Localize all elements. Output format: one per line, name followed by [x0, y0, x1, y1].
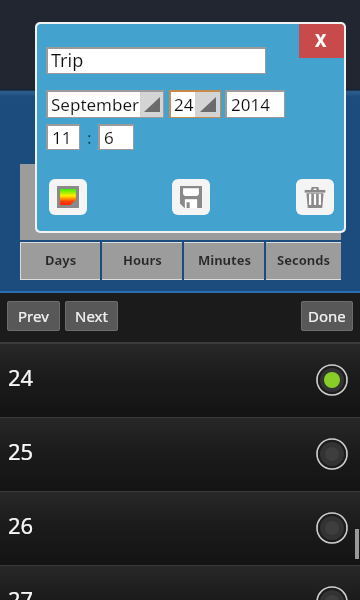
staticText: Trip — [51, 48, 84, 72]
button[interactable]: Seconds — [266, 243, 341, 279]
other: Not selected — [315, 437, 349, 471]
staticText: Hours — [123, 251, 162, 269]
staticText: Next — [75, 306, 108, 326]
button[interactable]: Close — [299, 24, 344, 58]
staticText: Done — [308, 306, 346, 326]
button[interactable]: 27 — [0, 566, 360, 600]
button[interactable]: Minutes — [184, 243, 264, 279]
button[interactable]: 11 — [48, 126, 79, 149]
other: Selected — [315, 363, 349, 397]
button[interactable]: September — [48, 92, 163, 117]
other: Save — [180, 186, 202, 208]
staticText: 26 — [8, 510, 34, 540]
button[interactable]: 24 — [171, 92, 220, 117]
staticText: 11 — [52, 126, 72, 149]
staticText: Seconds — [277, 251, 330, 269]
button[interactable]: 26 — [0, 492, 360, 565]
button[interactable]: 2014 — [227, 92, 284, 117]
staticText: Prev — [18, 306, 49, 326]
button[interactable]: Pick colour — [49, 179, 87, 215]
other: Delete — [304, 186, 326, 208]
staticText: Days — [45, 251, 77, 269]
staticText: : — [87, 126, 92, 149]
staticText: 24 — [8, 362, 34, 392]
other: Not selected — [315, 511, 349, 545]
button[interactable]: 24 — [0, 344, 360, 417]
staticText: 25 — [8, 436, 34, 466]
button[interactable]: Done — [301, 301, 353, 331]
button[interactable]: Delete — [296, 179, 334, 215]
button[interactable]: Prev — [7, 301, 60, 331]
staticText: September — [51, 93, 140, 116]
button[interactable]: Hours — [102, 243, 182, 279]
staticText: X — [315, 29, 327, 52]
staticText: 27 — [8, 584, 34, 600]
button[interactable]: Save — [172, 179, 210, 215]
button[interactable]: Next — [65, 301, 118, 331]
button[interactable]: Days — [21, 243, 100, 279]
staticText: 6 — [104, 126, 114, 149]
button[interactable]: Trip — [48, 49, 265, 73]
other: Not selected — [315, 585, 349, 600]
button[interactable]: 6 — [100, 126, 133, 149]
staticText: 24 — [174, 93, 194, 116]
other: Pick colour — [57, 186, 79, 208]
staticText: 2014 — [231, 93, 270, 116]
button[interactable]: 25 — [0, 418, 360, 491]
staticText: Minutes — [198, 251, 251, 269]
